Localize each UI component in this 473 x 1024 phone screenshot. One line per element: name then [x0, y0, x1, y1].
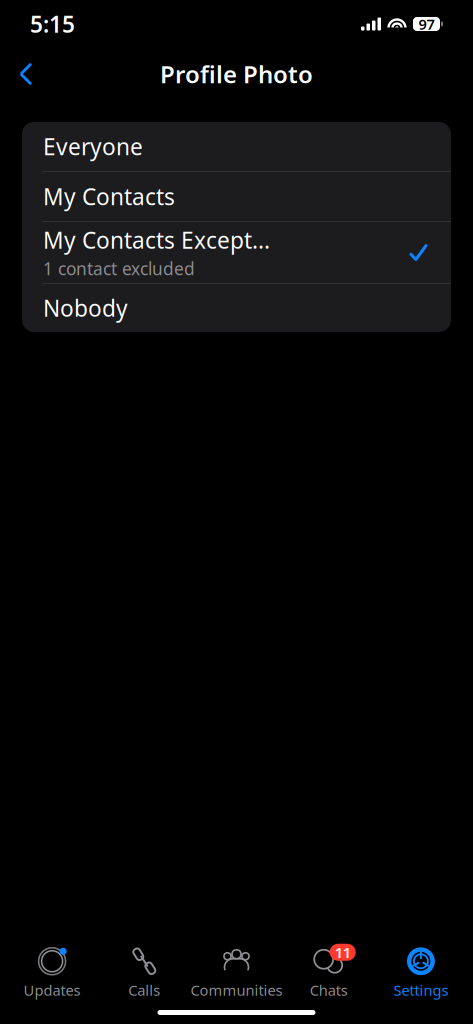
staticText: Everyone — [43, 131, 143, 161]
staticText: Chats — [310, 980, 348, 1000]
staticText: Profile Photo — [160, 58, 313, 90]
button[interactable]: My Contacts Except... — [22, 222, 451, 283]
button[interactable]: Back — [4, 52, 48, 96]
button[interactable]: Communities — [190, 946, 283, 1000]
button[interactable]: Everyone — [22, 122, 451, 171]
staticText: 97 — [418, 14, 434, 34]
staticText: My Contacts Except... — [43, 225, 270, 255]
staticText: 11 — [335, 942, 351, 962]
staticText: Settings — [393, 980, 448, 1000]
staticText: My Contacts — [43, 181, 175, 211]
staticText: 1 contact excluded — [43, 257, 195, 280]
button[interactable]: 11 — [283, 946, 375, 1000]
staticText: Calls — [128, 980, 160, 1000]
staticText: Communities — [190, 980, 282, 1000]
button[interactable]: Calls — [98, 946, 190, 1000]
button[interactable]: Nobody — [22, 284, 451, 332]
staticText: Nobody — [43, 293, 128, 323]
staticText: 5:15 — [30, 9, 75, 39]
button[interactable]: Updates — [6, 946, 98, 1000]
button[interactable]: Settings — [375, 946, 467, 1000]
staticText: Updates — [24, 980, 81, 1000]
button[interactable]: My Contacts — [22, 172, 451, 221]
